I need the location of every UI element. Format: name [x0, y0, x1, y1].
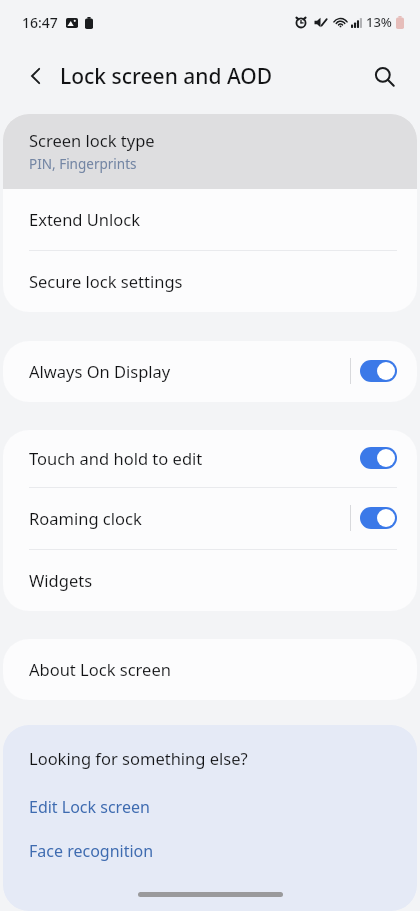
button[interactable]: Always On Display [3, 341, 417, 402]
staticText: Screen lock type [29, 129, 155, 151]
button[interactable]: Back [14, 54, 58, 98]
staticText: Always On Display [29, 360, 171, 382]
staticText: About Lock screen [29, 658, 171, 680]
button[interactable]: Search [362, 54, 406, 98]
button[interactable]: Roaming clock [3, 488, 417, 549]
button[interactable]: Widgets [3, 550, 417, 611]
staticText: Touch and hold to edit [29, 447, 203, 469]
staticText: Roaming clock [29, 507, 142, 529]
button[interactable]: Toggle on [360, 507, 397, 529]
staticText: Face recognition [29, 840, 154, 862]
button[interactable]: Toggle on [360, 360, 397, 382]
button[interactable]: Secure lock settings [3, 251, 417, 312]
staticText: Extend Unlock [29, 208, 141, 230]
button[interactable]: Extend Unlock [3, 189, 417, 250]
staticText: Lock screen and AOD [60, 62, 273, 91]
button[interactable]: About Lock screen [3, 639, 417, 700]
button[interactable]: Face recognition [3, 829, 417, 873]
staticText: 16:47 [22, 13, 58, 32]
staticText: 13% [366, 13, 392, 31]
button[interactable]: Touch and hold to edit [3, 430, 417, 487]
staticText: Widgets [29, 569, 93, 591]
staticText: Edit Lock screen [29, 796, 150, 818]
staticText: Secure lock settings [29, 270, 183, 292]
button[interactable]: Edit Lock screen [3, 785, 417, 829]
button[interactable]: Toggle on [360, 447, 397, 469]
staticText: Looking for something else? [29, 747, 248, 769]
staticText: PIN, Fingerprints [29, 155, 137, 173]
button[interactable]: Screen lock type [3, 114, 417, 189]
